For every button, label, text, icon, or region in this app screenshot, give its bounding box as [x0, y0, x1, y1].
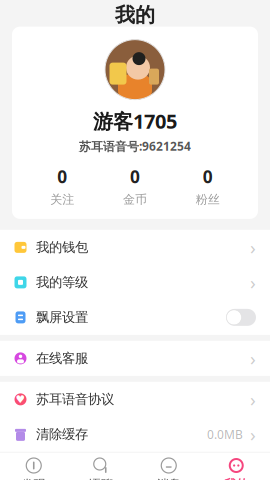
staticText: 我的	[115, 3, 155, 27]
staticText: ›	[250, 235, 256, 260]
staticText: 0.0MB	[207, 426, 243, 442]
button[interactable]: 我的	[202, 452, 270, 480]
button[interactable]: 我的钱包	[0, 230, 270, 265]
button[interactable]: 消息	[135, 452, 202, 480]
button[interactable]: 语聊	[67, 452, 135, 480]
staticText: ›	[250, 422, 256, 447]
staticText: 我的钱包	[36, 239, 88, 256]
staticText: 语聊	[89, 477, 113, 480]
staticText: 飘屏设置	[36, 309, 88, 326]
button[interactable]: ♥	[0, 382, 270, 417]
staticText: 我的	[224, 477, 248, 480]
staticText: 清除缓存	[36, 426, 88, 443]
staticText: 关注	[50, 192, 74, 207]
staticText: ›	[250, 387, 256, 412]
staticText: ›	[250, 346, 256, 371]
button[interactable]: 清除缓存	[0, 417, 270, 452]
button[interactable]: 飘屏设置	[0, 300, 270, 335]
staticText: 粉丝	[196, 192, 220, 207]
staticText: 苏耳语音协议	[36, 391, 114, 408]
staticText: ♥	[15, 393, 25, 405]
staticText: ›	[250, 270, 256, 295]
button[interactable]: 我的等级	[0, 265, 270, 300]
staticText: 我的等级	[36, 274, 88, 291]
staticText: 0	[130, 165, 140, 188]
staticText: 苏耳语音号:9621254	[79, 138, 191, 154]
button[interactable]: 发现	[0, 452, 67, 480]
staticText: 0	[57, 165, 67, 188]
staticText: 0	[203, 165, 213, 188]
button[interactable]: 在线客服	[0, 341, 270, 376]
staticText: 在线客服	[36, 350, 88, 367]
staticText: 消息	[157, 477, 181, 480]
staticText: 金币	[123, 192, 147, 207]
staticText: 游客1705	[93, 108, 177, 134]
staticText: 发现	[22, 477, 46, 480]
